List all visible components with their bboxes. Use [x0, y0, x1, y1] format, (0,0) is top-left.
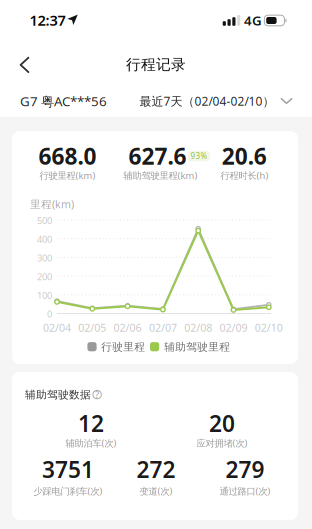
staticText: 02/07	[149, 320, 177, 335]
staticText: 里程(km)	[30, 197, 74, 211]
button[interactable]: 最近7天（02/04-02/10）	[140, 93, 292, 109]
staticText: 400	[37, 233, 52, 245]
staticText: 4G	[244, 11, 262, 29]
staticText: 02/08	[184, 320, 212, 335]
staticText: 行驶里程(km)	[39, 169, 95, 181]
staticText: 辅助泊车(次)	[65, 437, 116, 449]
staticText: 最近7天（02/04-02/10）	[140, 93, 275, 109]
staticText: G7 粤AC***56	[20, 92, 107, 110]
staticText: 02/09	[219, 320, 247, 335]
staticText: 辅助驾驶里程(km)	[123, 169, 197, 181]
staticText: 627.6	[128, 141, 186, 171]
staticText: 02/05	[78, 320, 106, 335]
staticText: 0	[47, 308, 52, 320]
staticText: 100	[37, 289, 52, 301]
staticText: 变道(次)	[139, 485, 172, 497]
staticText: 12:37	[29, 10, 65, 30]
staticText: 通过路口(次)	[219, 485, 270, 497]
staticText: 3751	[42, 454, 94, 484]
staticText: 02/10	[255, 320, 283, 335]
staticText: 行程时长(h)	[220, 169, 268, 181]
staticText: 272	[136, 454, 175, 484]
staticText: 200	[37, 270, 52, 283]
staticText: 辅助驾驶数据	[25, 388, 91, 401]
staticText: 12	[78, 408, 104, 438]
staticText: 少踩电门刹车(次)	[33, 485, 102, 497]
staticText: 02/04	[43, 320, 71, 335]
staticText: 02/06	[114, 320, 142, 335]
button[interactable]: G7 粤AC***56	[20, 92, 107, 110]
staticText: 279	[225, 454, 264, 484]
staticText: 300	[37, 252, 52, 264]
staticText: 93%	[190, 151, 207, 161]
staticText: 20.6	[222, 141, 267, 171]
staticText: ?	[95, 388, 99, 401]
staticText: 20	[209, 408, 235, 438]
staticText: 668.0	[38, 141, 96, 171]
staticText: 应对拥堵(次)	[196, 437, 247, 449]
staticText: 500	[37, 214, 52, 227]
staticText: 行程记录	[126, 56, 186, 74]
button[interactable]: 返回	[11, 51, 37, 79]
button[interactable]: 说明	[92, 390, 102, 400]
staticText: 行驶里程	[101, 340, 145, 353]
staticText: 辅助驾驶里程	[164, 340, 230, 353]
